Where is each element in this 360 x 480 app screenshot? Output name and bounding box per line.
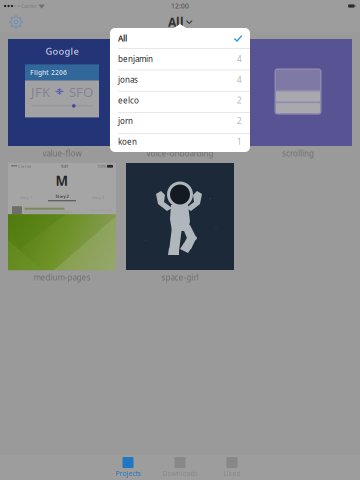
staticText: voice-onboarding bbox=[146, 148, 213, 159]
button[interactable]: koen bbox=[110, 131, 250, 152]
staticText: M bbox=[55, 172, 68, 189]
staticText: Carrier bbox=[17, 164, 32, 169]
button[interactable]: Google bbox=[8, 39, 116, 158]
staticText: ••• bbox=[11, 163, 17, 170]
staticText: Flight 2206 bbox=[30, 68, 67, 77]
staticText: 1 bbox=[237, 136, 242, 147]
button[interactable]: eelco bbox=[110, 90, 250, 111]
button[interactable]: jorn bbox=[110, 111, 250, 131]
staticText: space-girl bbox=[161, 272, 198, 283]
button[interactable]: jonas bbox=[110, 69, 250, 90]
staticText: Google bbox=[45, 45, 78, 57]
button[interactable]: All bbox=[110, 28, 250, 49]
staticText: 4 bbox=[237, 54, 242, 64]
staticText: 9:41 bbox=[61, 164, 68, 169]
button[interactable]: Settings bbox=[4, 12, 28, 32]
staticText: jorn bbox=[118, 116, 133, 126]
staticText: SFO bbox=[69, 83, 93, 101]
staticText: JFK bbox=[31, 83, 50, 101]
staticText: eelco bbox=[118, 95, 139, 106]
staticText: 2 bbox=[237, 95, 242, 106]
button[interactable]: Downloads bbox=[154, 457, 206, 478]
staticText: medium-pages bbox=[33, 272, 90, 283]
button[interactable]: All bbox=[162, 12, 198, 32]
staticText: Liked bbox=[223, 469, 240, 478]
staticText: 100% bbox=[97, 164, 106, 169]
staticText: 2 bbox=[237, 116, 242, 126]
button[interactable]: Projects bbox=[102, 457, 154, 478]
staticText: benjamin bbox=[118, 54, 153, 64]
staticText: value-flow bbox=[42, 148, 81, 159]
staticText: scrolling bbox=[282, 148, 314, 159]
staticText: Story 2 bbox=[55, 193, 68, 199]
staticText: All bbox=[168, 14, 184, 30]
staticText: Story 3 bbox=[92, 195, 104, 200]
button[interactable]: space-girl bbox=[126, 163, 234, 282]
staticText: Downloads bbox=[162, 469, 197, 478]
staticText: jonas bbox=[118, 74, 138, 85]
staticText: 4 bbox=[237, 74, 242, 85]
button[interactable]: ••• bbox=[8, 163, 116, 282]
button[interactable]: Liked bbox=[206, 457, 258, 478]
button[interactable]: scrolling bbox=[244, 39, 352, 158]
button[interactable]: voice-onboarding bbox=[126, 39, 234, 158]
button[interactable]: benjamin bbox=[110, 49, 250, 69]
staticText: 12:00 bbox=[171, 2, 189, 10]
staticText: All bbox=[118, 33, 127, 44]
staticText: koen bbox=[118, 136, 137, 147]
staticText: Story 1 bbox=[20, 195, 32, 200]
staticText: Carrier bbox=[20, 2, 37, 10]
staticText: Projects bbox=[115, 469, 140, 478]
